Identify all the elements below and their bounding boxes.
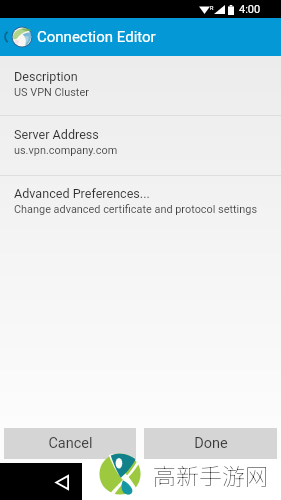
staticText: Connection Editor bbox=[37, 28, 156, 46]
staticText: US VPN Cluster bbox=[14, 86, 89, 99]
button[interactable]: Server Address bbox=[0, 116, 281, 175]
staticText: Description bbox=[14, 69, 78, 84]
staticText: Cancel bbox=[48, 435, 93, 452]
staticText: Server Address bbox=[14, 127, 99, 142]
staticText: 高新手游网 bbox=[153, 458, 268, 491]
staticText: 4:00 bbox=[239, 3, 261, 16]
button[interactable]: Back bbox=[46, 466, 78, 498]
staticText: Advanced Preferences... bbox=[14, 186, 150, 201]
staticText: R bbox=[210, 5, 214, 11]
staticText: us.vpn.company.com bbox=[14, 144, 118, 157]
button[interactable]: Advanced Preferences... bbox=[0, 176, 281, 235]
button[interactable]: Cancel bbox=[4, 428, 136, 459]
staticText: Done bbox=[194, 435, 228, 452]
button[interactable]: Back bbox=[0, 18, 12, 56]
button[interactable]: Description bbox=[0, 56, 281, 115]
button[interactable]: Done bbox=[144, 428, 277, 459]
staticText: Change advanced certificate and protocol… bbox=[14, 203, 258, 216]
